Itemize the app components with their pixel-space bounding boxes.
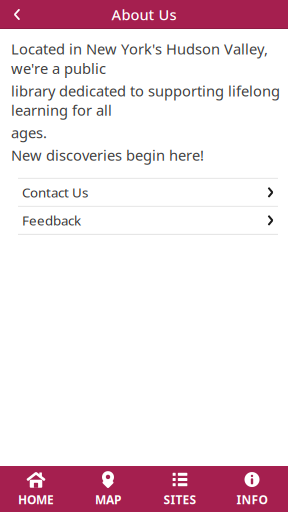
button[interactable]: Feedback [0, 207, 288, 234]
staticText: INFO [236, 491, 267, 507]
staticText: Feedback [22, 211, 81, 229]
staticText: Contact Us [22, 183, 88, 201]
staticText: MAP [95, 491, 121, 507]
button[interactable]: INFO [216, 466, 288, 512]
staticText: Located in New York's Hudson Valley, we'… [11, 39, 268, 78]
button[interactable]: MAP [72, 466, 144, 512]
staticText: ages. [11, 123, 47, 142]
button[interactable]: SITES [144, 466, 216, 512]
staticText: SITES [163, 491, 196, 507]
button[interactable]: Contact Us [0, 179, 288, 206]
staticText: About Us [111, 5, 176, 24]
staticText: library dedicated to supporting lifelong… [11, 81, 280, 120]
staticText: New discoveries begin here! [11, 145, 204, 165]
button[interactable]: HOME [0, 466, 72, 512]
staticText: HOME [18, 491, 54, 507]
button[interactable]: Back [0, 0, 34, 29]
